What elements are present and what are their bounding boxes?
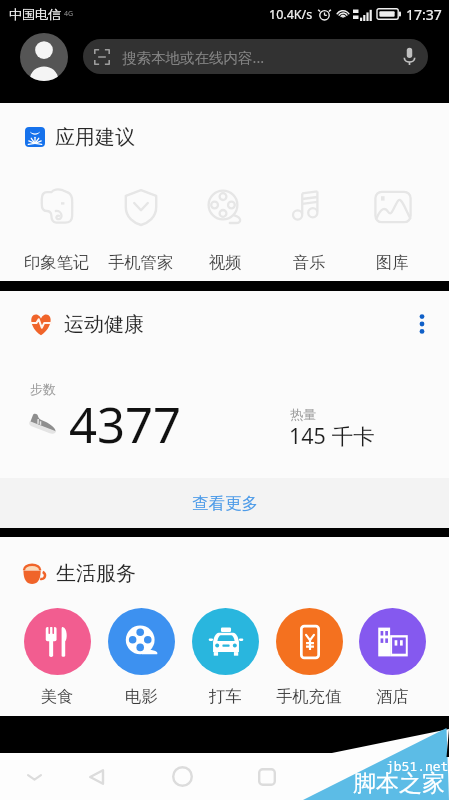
button[interactable]: More options	[407, 311, 437, 337]
staticText: 运动健康	[64, 312, 144, 337]
staticText: 17:37	[406, 5, 442, 24]
button[interactable]: 手机充值	[267, 608, 351, 707]
staticText: 搜索本地或在线内容...	[122, 47, 265, 67]
button[interactable]: Scan	[83, 39, 428, 74]
staticText: 电影	[125, 686, 158, 707]
staticText: 查看更多	[192, 493, 258, 514]
button[interactable]: 查看更多	[0, 478, 449, 528]
staticText: 10.4K/s	[269, 6, 313, 23]
staticText: 酒店	[376, 686, 409, 707]
button[interactable]: 图库	[351, 187, 434, 273]
staticText: 手机管家	[108, 252, 174, 273]
staticText: 手机充值	[276, 686, 342, 707]
button[interactable]: 酒店	[351, 608, 434, 707]
button[interactable]: Profile	[20, 33, 68, 81]
staticText: 中国电信	[9, 6, 61, 22]
button[interactable]: Hide	[10, 753, 58, 800]
button[interactable]: 视频	[183, 187, 267, 273]
button[interactable]: 印象笔记	[15, 187, 99, 273]
staticText: 4G	[64, 9, 74, 19]
staticText: 步数	[30, 381, 56, 397]
button[interactable]: Back	[73, 753, 121, 800]
staticText: 印象笔记	[24, 252, 90, 273]
staticText: 脚本之家	[353, 769, 445, 798]
button[interactable]: 打车	[183, 608, 267, 707]
staticText: 视频	[209, 252, 242, 273]
other: Voice search	[403, 47, 416, 66]
button[interactable]: Home	[158, 753, 206, 800]
button[interactable]: 手机管家	[99, 187, 183, 273]
staticText: 145 千卡	[289, 421, 375, 450]
staticText: 生活服务	[56, 561, 136, 586]
button[interactable]: 电影	[99, 608, 183, 707]
button[interactable]: Recents	[243, 753, 291, 800]
staticText: 图库	[376, 252, 409, 273]
staticText: 音乐	[293, 252, 326, 273]
other: Scan	[94, 49, 110, 65]
staticText: 美食	[41, 686, 74, 707]
button[interactable]: 美食	[15, 608, 99, 707]
staticText: 应用建议	[55, 125, 135, 150]
staticText: 4377	[69, 391, 182, 458]
staticText: jb51.net	[386, 757, 449, 775]
staticText: 打车	[209, 686, 242, 707]
staticText: 热量	[290, 406, 316, 422]
button[interactable]: 音乐	[267, 187, 351, 273]
